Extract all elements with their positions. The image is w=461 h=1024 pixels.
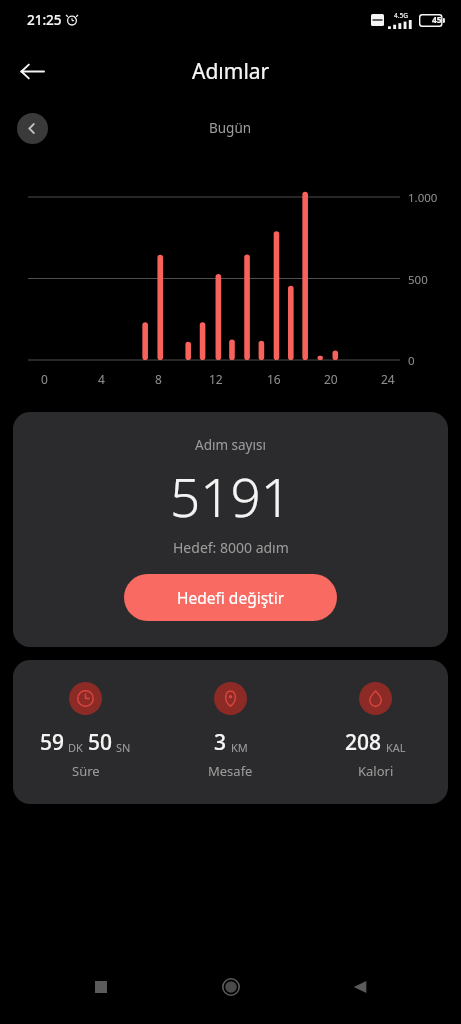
staticText: Süre bbox=[72, 762, 100, 780]
staticText: Kalori bbox=[358, 762, 394, 780]
staticText: 12 bbox=[209, 371, 223, 387]
staticText: Hedefi değiştir bbox=[177, 587, 285, 608]
staticText: 4 bbox=[98, 371, 105, 387]
staticText: 500 bbox=[408, 272, 428, 288]
button[interactable]: Mesafe bbox=[158, 682, 303, 780]
button[interactable]: Home bbox=[203, 959, 259, 1015]
staticText: 3 bbox=[214, 728, 227, 757]
staticText: Adımlar bbox=[192, 57, 270, 86]
staticText: 45 bbox=[432, 14, 442, 26]
staticText: KAL bbox=[386, 740, 406, 755]
staticText: Mesafe bbox=[208, 762, 253, 780]
staticText: 1.000 bbox=[408, 190, 438, 206]
button[interactable]: Previous day bbox=[17, 113, 48, 144]
staticText: SN bbox=[116, 740, 131, 755]
staticText: 21:25 bbox=[27, 11, 62, 29]
staticText: KM bbox=[231, 740, 248, 755]
staticText: 20 bbox=[324, 371, 338, 387]
other: Kalori bbox=[359, 682, 392, 715]
staticText: 16 bbox=[267, 371, 281, 387]
staticText: DK bbox=[68, 740, 83, 755]
staticText: 24 bbox=[381, 371, 395, 387]
staticText: 0 bbox=[41, 371, 48, 387]
staticText: 59 bbox=[40, 728, 65, 757]
button[interactable]: Kalori bbox=[303, 682, 448, 780]
staticText: Adım sayısı bbox=[195, 436, 266, 454]
other: Süre bbox=[69, 682, 102, 715]
staticText: 8 bbox=[155, 371, 162, 387]
staticText: Bugün bbox=[209, 119, 252, 137]
staticText: 4.5G bbox=[394, 11, 408, 20]
staticText: 0 bbox=[408, 353, 415, 369]
button[interactable]: Back bbox=[8, 47, 56, 95]
button[interactable]: Süre bbox=[13, 682, 158, 780]
staticText: 50 bbox=[88, 728, 113, 757]
staticText: 5191 bbox=[170, 460, 292, 532]
button[interactable]: Hedefi değiştir bbox=[124, 574, 337, 621]
button[interactable]: Back bbox=[332, 959, 388, 1015]
staticText: 208 bbox=[345, 728, 382, 757]
button[interactable]: Recents bbox=[73, 959, 129, 1015]
button[interactable]: Adım sayısı bbox=[13, 412, 448, 647]
other: Mesafe bbox=[214, 682, 247, 715]
staticText: Hedef: 8000 adım bbox=[173, 538, 289, 557]
